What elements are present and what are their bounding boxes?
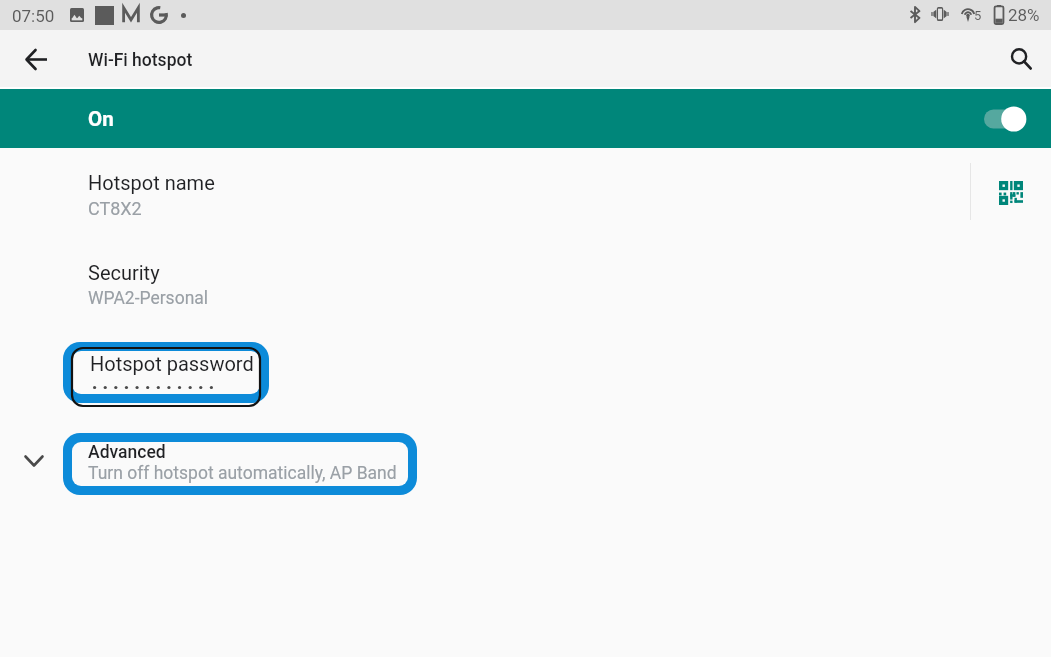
button[interactable]: Security xyxy=(0,248,1051,338)
staticText: CT8X2 xyxy=(88,198,142,219)
staticText: 28% xyxy=(1008,5,1040,25)
button[interactable]: Hotspot on/off switch xyxy=(980,94,1030,144)
staticText: On xyxy=(88,107,114,131)
staticText: Hotspot name xyxy=(88,171,215,194)
button[interactable]: Share hotspot QR code xyxy=(982,158,1040,228)
button[interactable]: Search xyxy=(998,37,1043,82)
staticText: Turn off hotspot automatically, AP Band xyxy=(88,463,397,484)
button[interactable]: Hotspot name xyxy=(0,158,1051,248)
staticText: Security xyxy=(88,261,160,284)
staticText: Hotspot password xyxy=(90,352,254,375)
staticText: 5 xyxy=(974,8,982,23)
button[interactable] xyxy=(72,351,260,394)
staticText: Wi-Fi hotspot xyxy=(88,50,193,71)
staticText: WPA2-Personal xyxy=(88,288,209,309)
staticText: Advanced xyxy=(88,442,166,463)
staticText: 07:50 xyxy=(12,6,55,26)
button[interactable]: Navigate up xyxy=(13,37,58,82)
button[interactable]: On xyxy=(0,89,1051,148)
button[interactable] xyxy=(72,442,408,486)
